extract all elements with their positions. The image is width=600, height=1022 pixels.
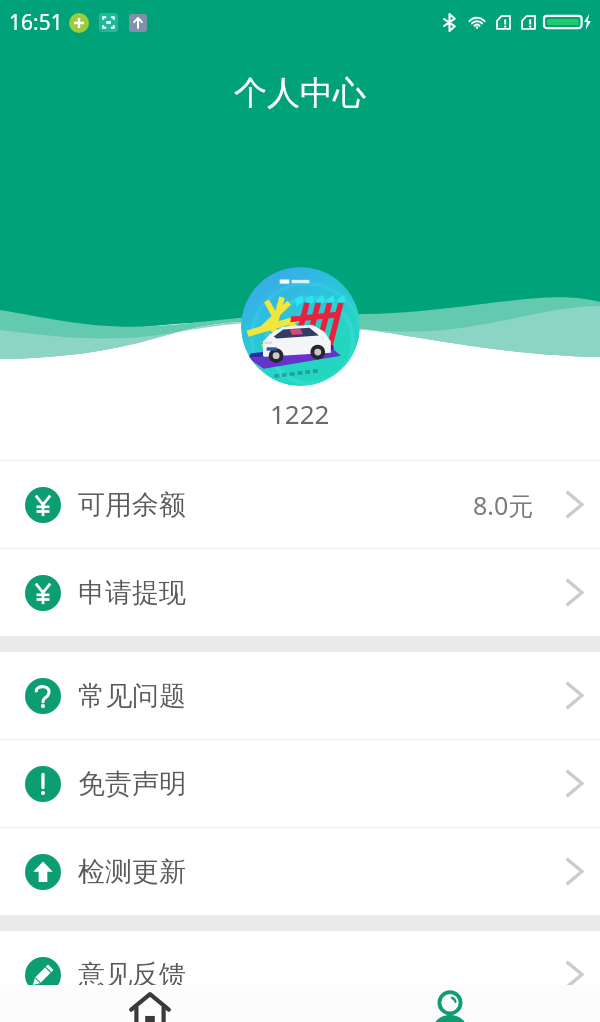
staticText: 1222 xyxy=(270,396,330,431)
button[interactable]: Profile xyxy=(300,985,600,1022)
staticText: 意见反馈 xyxy=(78,958,186,992)
staticText: 可用余额 xyxy=(78,488,186,522)
staticText: 个人中心 xyxy=(234,72,366,114)
button[interactable]: 免责声明 xyxy=(0,740,600,827)
staticText: 常见问题 xyxy=(78,679,186,713)
button[interactable]: 检测更新 xyxy=(0,828,600,915)
staticText: 检测更新 xyxy=(78,855,186,889)
button[interactable]: 申请提现 xyxy=(0,549,600,636)
staticText: 8.0元 xyxy=(473,488,534,522)
staticText: 申请提现 xyxy=(78,576,186,610)
button[interactable]: 可用余额 xyxy=(0,461,600,548)
button[interactable]: 常见问题 xyxy=(0,652,600,739)
staticText: 免责声明 xyxy=(78,767,186,801)
staticText: 16:51 xyxy=(9,8,63,37)
button[interactable]: 意见反馈 xyxy=(0,931,600,1018)
button[interactable]: Profile photo xyxy=(241,267,360,386)
button[interactable]: Home xyxy=(0,985,300,1022)
